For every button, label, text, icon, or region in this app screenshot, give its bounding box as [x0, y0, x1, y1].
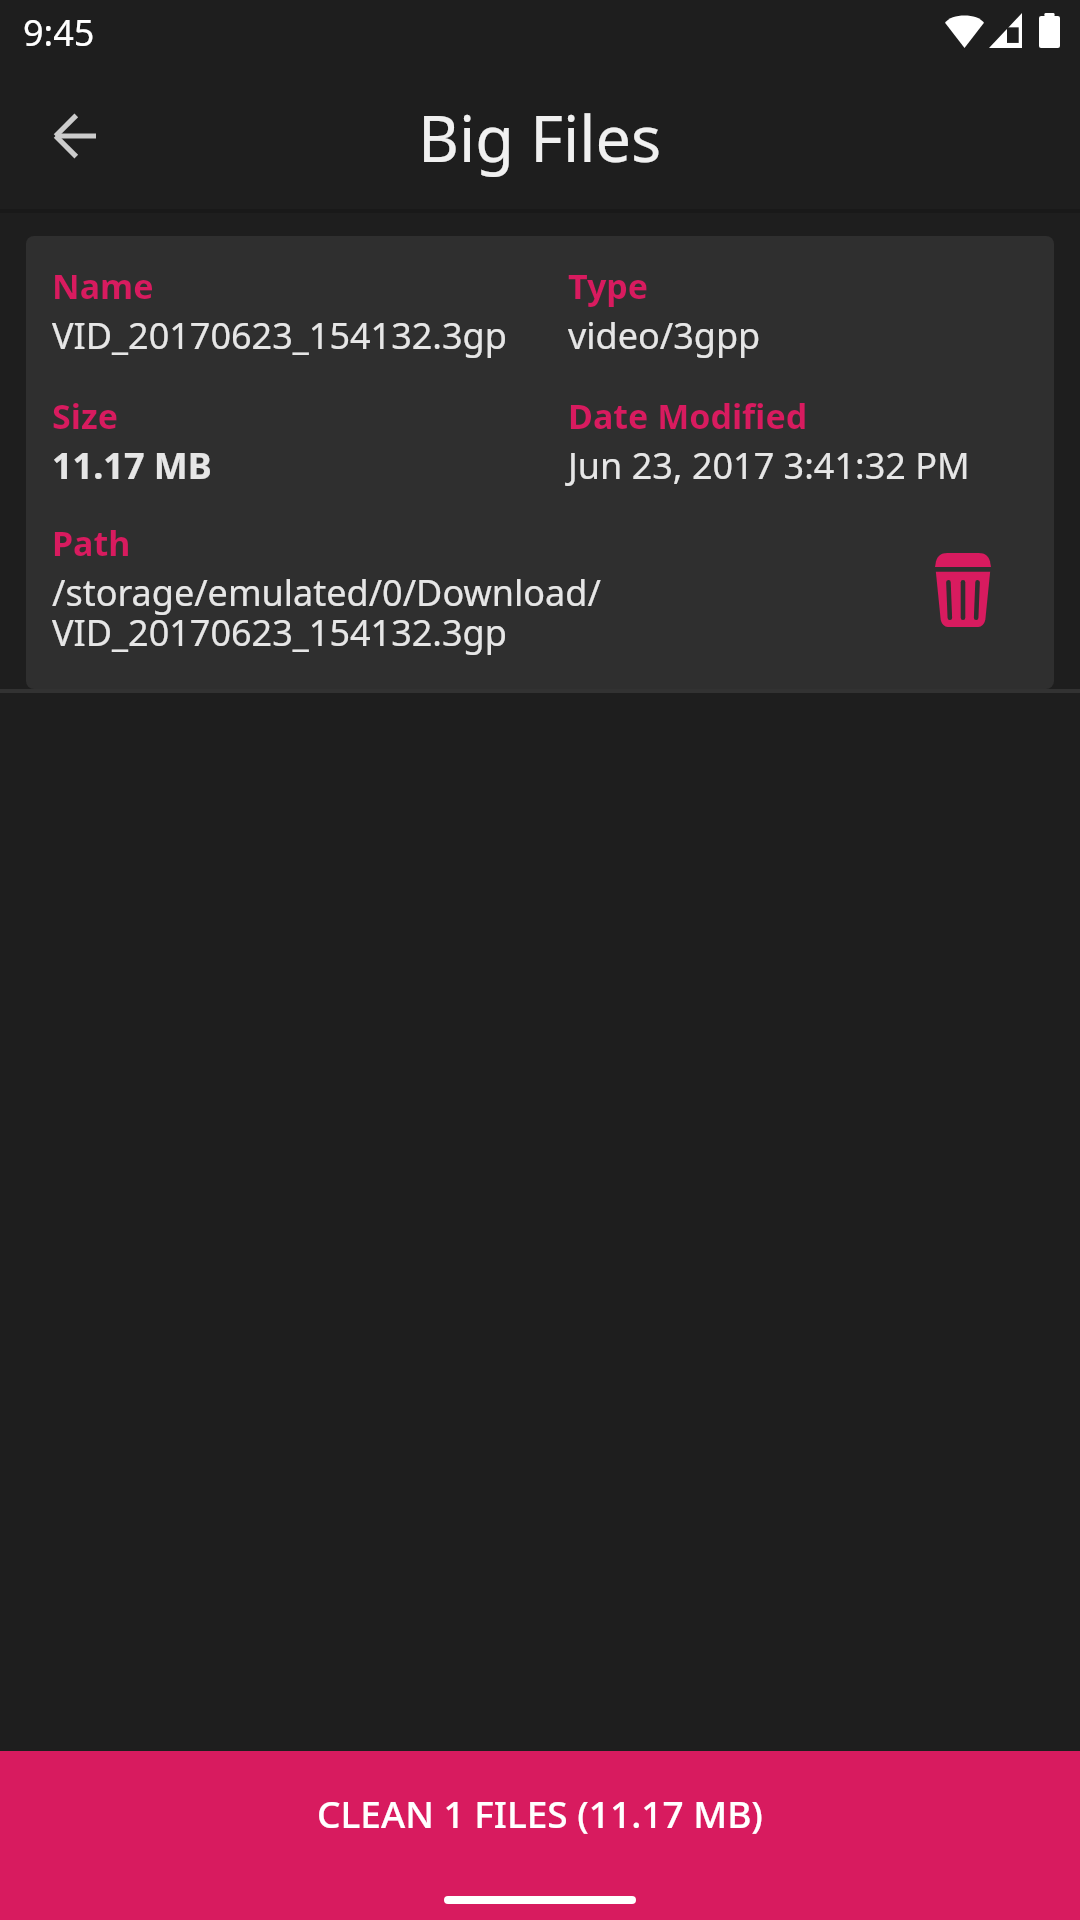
- button[interactable]: CLEAN 1 FILES (11.17 MB): [0, 1751, 1080, 1920]
- staticText: video/3gpp: [568, 311, 761, 360]
- staticText: /storage/emulated/0/Download/ VID_201706…: [52, 568, 601, 657]
- staticText: Jun 23, 2017 3:41:32 PM: [568, 441, 970, 490]
- staticText: Name: [52, 263, 154, 309]
- staticText: CLEAN 1 FILES (11.17 MB): [317, 1788, 763, 1838]
- button[interactable]: Name: [26, 236, 1054, 689]
- button[interactable]: Delete: [915, 542, 1011, 638]
- staticText: Size: [52, 393, 118, 439]
- staticText: Big Files: [418, 95, 662, 181]
- staticText: 11.17 MB: [52, 441, 212, 490]
- staticText: Type: [568, 263, 649, 309]
- staticText: Path: [52, 520, 131, 566]
- staticText: 9:45: [23, 8, 95, 57]
- staticText: VID_20170623_154132.3gp: [52, 311, 507, 360]
- button[interactable]: Back: [26, 88, 122, 184]
- staticText: Date Modified: [568, 393, 808, 439]
